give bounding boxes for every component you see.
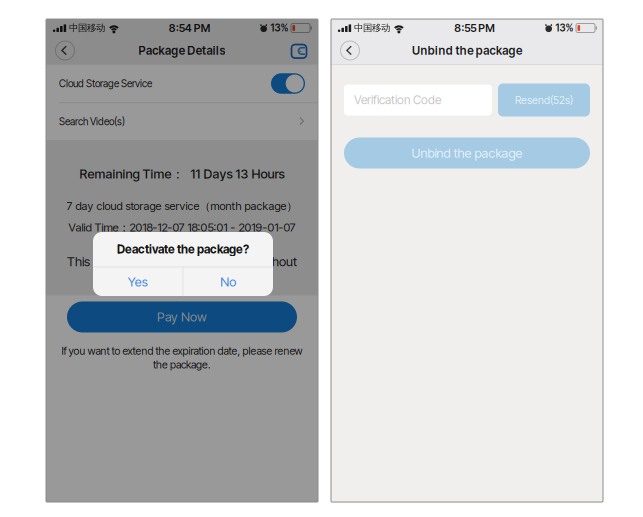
staticText: 13% (270, 22, 288, 34)
staticText: Verification Code (354, 93, 441, 107)
button[interactable]: No (183, 267, 273, 296)
staticText: 中国移动 (69, 22, 105, 34)
button[interactable]: Pay Now (67, 301, 297, 332)
staticText: Unbind the package (412, 43, 522, 57)
staticText: Resend(52s) (515, 93, 573, 106)
button[interactable]: Wallet (285, 37, 313, 64)
staticText: Valid Time：2018-12-07 18:05:01 - 2019-01… (68, 220, 295, 235)
staticText: 8:55 PM (454, 21, 495, 35)
button[interactable]: Cloud Storage Service (46, 64, 318, 102)
staticText: Deactivate the package? (117, 242, 249, 256)
button[interactable]: Search Video(s) (46, 103, 318, 140)
button[interactable]: Yes (93, 267, 183, 296)
staticText: Unbind the package (411, 145, 522, 161)
button[interactable]: Unbind the package (344, 137, 590, 168)
staticText: Search Video(s) (59, 116, 125, 128)
staticText: Yes (128, 274, 148, 290)
staticText: 8:54 PM (169, 21, 211, 35)
staticText: If you want to extend the expiration dat… (61, 344, 302, 357)
staticText: 13% (555, 22, 573, 34)
staticText: the package. (153, 358, 211, 371)
button[interactable]: Resend(52s) (498, 83, 590, 116)
staticText: No (220, 274, 236, 290)
button[interactable]: Back (336, 37, 364, 64)
staticText: Package Details (139, 43, 225, 57)
button[interactable]: Back (51, 37, 79, 64)
staticText: 中国移动 (354, 22, 390, 34)
staticText: Remaining Time： 11 Days 13 Hours (79, 166, 284, 182)
staticText: This package will be expired soon, witho… (67, 254, 297, 269)
staticText: 7 day cloud storage service（month packag… (66, 199, 297, 213)
staticText: Cloud Storage Service (59, 77, 152, 90)
staticText: Pay Now (157, 309, 207, 325)
